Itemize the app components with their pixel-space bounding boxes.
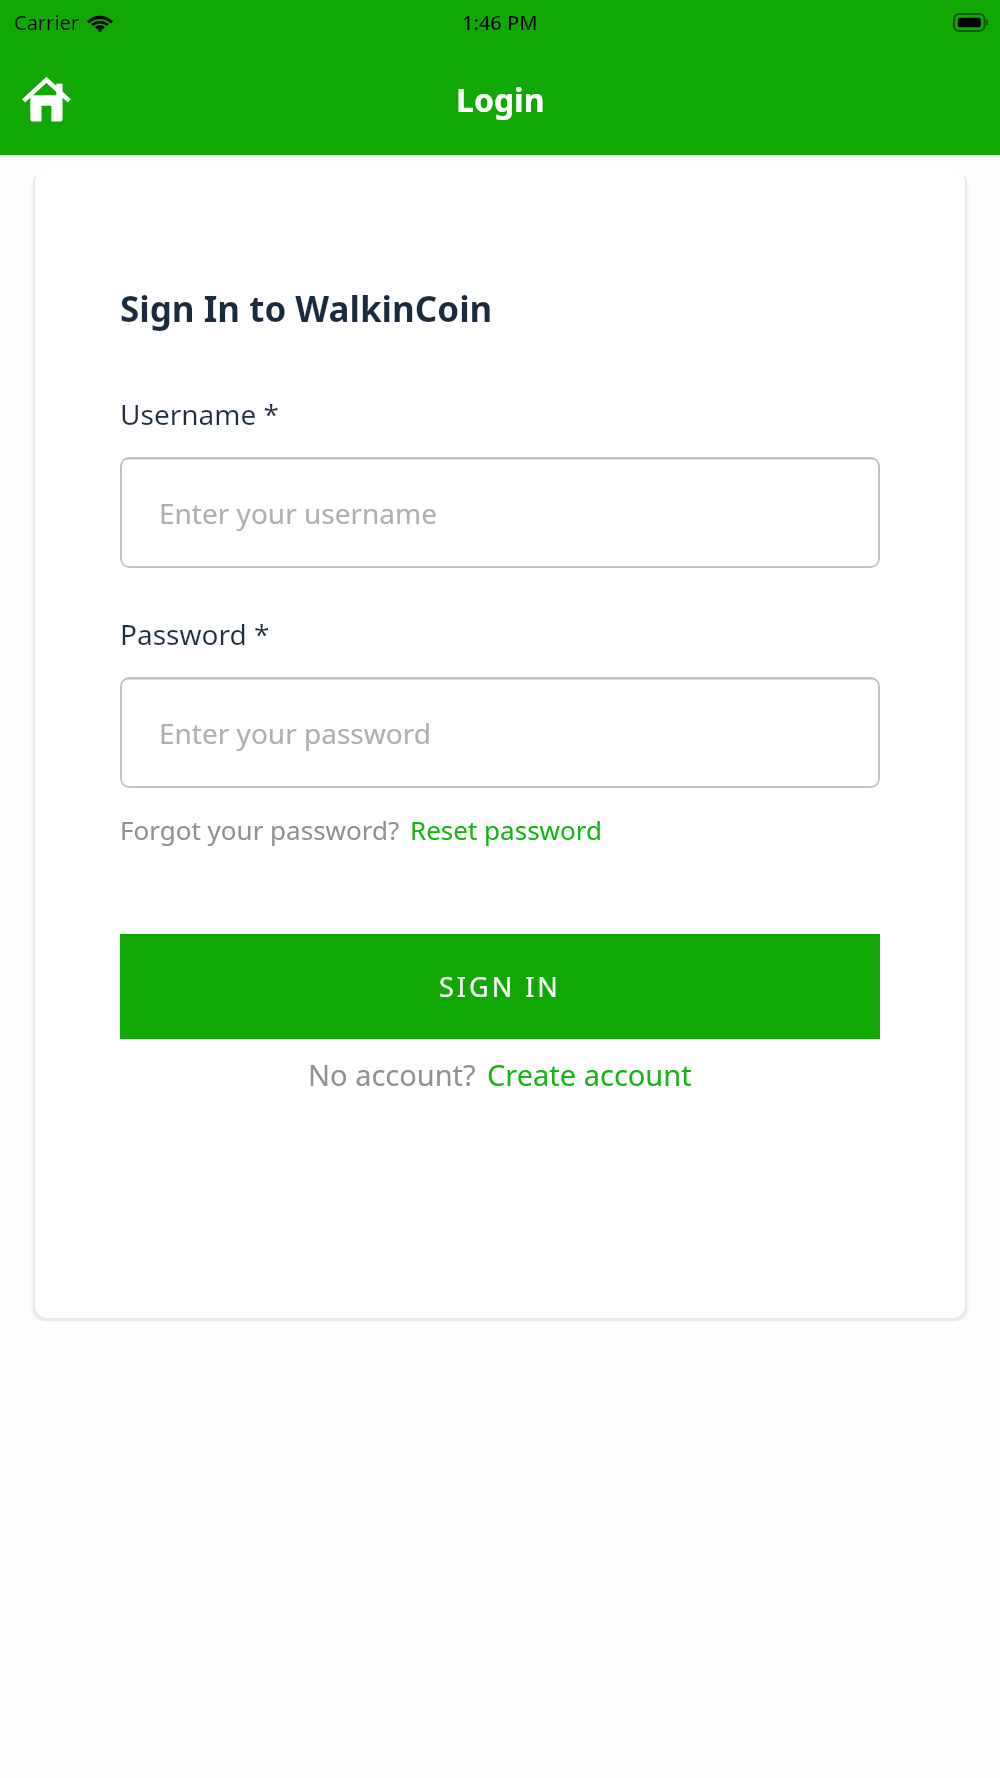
button[interactable]: Create account [487, 1055, 692, 1094]
staticText: Username * [120, 395, 279, 433]
button[interactable]: Reset password [410, 812, 602, 847]
button[interactable]: SIGN IN [120, 934, 880, 1039]
staticText: Enter your password [159, 714, 431, 752]
button[interactable]: Enter your password [120, 677, 880, 788]
staticText: 1:46 PM [462, 9, 538, 36]
staticText: No account? [308, 1055, 476, 1094]
staticText: Login [456, 78, 545, 122]
staticText: Create account [487, 1055, 692, 1094]
staticText: Enter your username [159, 494, 438, 532]
button[interactable]: Enter your username [120, 457, 880, 568]
staticText: SIGN IN [439, 968, 561, 1005]
staticText: Forgot your password? [120, 812, 400, 847]
staticText: Sign In to WalkinCoin [120, 285, 493, 333]
staticText: Reset password [410, 812, 602, 847]
staticText: Carrier [14, 9, 80, 36]
button[interactable]: Home [14, 66, 82, 134]
staticText: Password * [120, 615, 270, 653]
